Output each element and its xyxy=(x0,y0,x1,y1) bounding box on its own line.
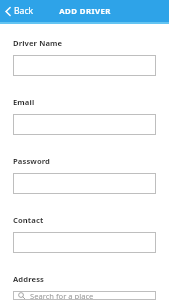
staticText: ADD DRIVER xyxy=(59,6,111,17)
button[interactable]: Search xyxy=(13,291,156,300)
staticText: Driver Name xyxy=(13,38,63,48)
staticText: Address xyxy=(13,274,44,284)
staticText: Contact xyxy=(13,215,44,225)
button[interactable] xyxy=(13,173,156,194)
button[interactable]: Back xyxy=(0,1,42,21)
staticText: Back xyxy=(14,5,34,17)
other: Search xyxy=(18,292,26,300)
button[interactable] xyxy=(13,55,156,76)
staticText: Password xyxy=(13,156,50,166)
button[interactable] xyxy=(13,232,156,253)
button[interactable] xyxy=(13,114,156,135)
staticText: Email xyxy=(13,97,35,107)
staticText: Search for a place xyxy=(30,291,94,300)
